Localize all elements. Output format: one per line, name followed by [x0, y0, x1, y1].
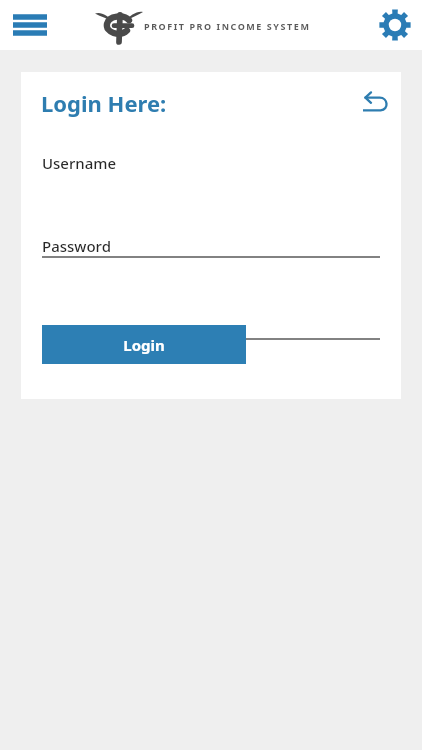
button[interactable]: Settings — [372, 2, 418, 48]
button[interactable]: Profit Pro Income System home — [94, 5, 314, 45]
button[interactable]: Password input field — [42, 282, 380, 340]
button[interactable]: Username input field — [42, 200, 380, 258]
button[interactable]: Back — [355, 84, 395, 124]
staticText: Password — [42, 236, 111, 256]
button[interactable]: Login — [42, 325, 246, 364]
staticText: Username — [42, 153, 117, 173]
button[interactable]: Open navigation menu — [6, 1, 54, 49]
staticText: Login Here: — [41, 88, 167, 118]
staticText: PROFIT PRO INCOME SYSTEM — [144, 20, 311, 32]
staticText: Login — [123, 335, 165, 355]
